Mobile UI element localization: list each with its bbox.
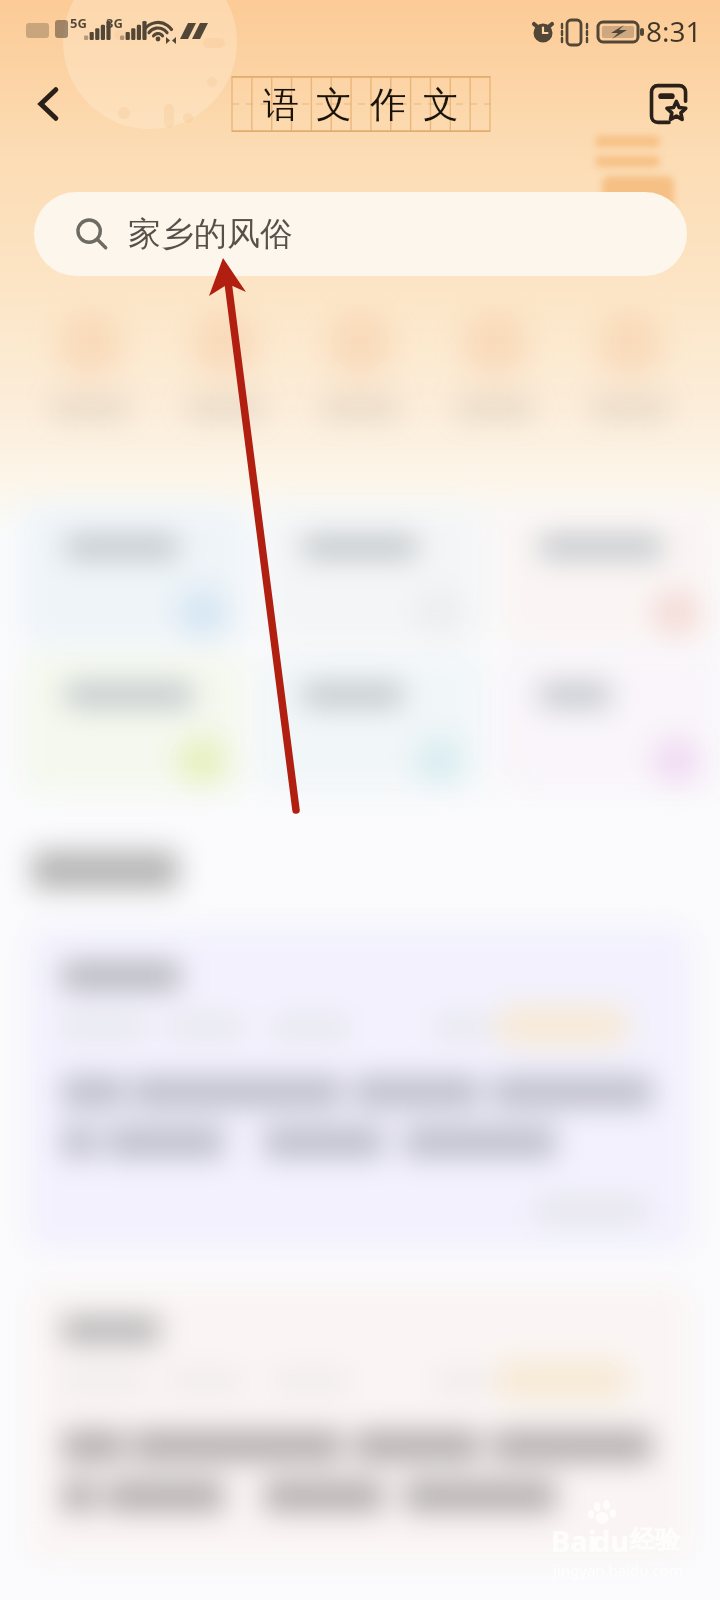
button[interactable]: Favorites — [638, 73, 700, 135]
button[interactable] — [259, 653, 485, 793]
staticText: 8:31 — [646, 12, 702, 50]
staticText: 文 — [316, 82, 352, 127]
staticText: 语 — [263, 82, 299, 127]
staticText: 家乡的风俗 — [128, 213, 293, 255]
button[interactable] — [22, 653, 248, 793]
staticText: du — [592, 1521, 630, 1560]
button[interactable]: 家乡的风俗 — [34, 192, 687, 276]
staticText: 文 — [423, 82, 459, 127]
button[interactable] — [496, 505, 720, 645]
button[interactable] — [28, 928, 692, 1250]
button[interactable]: Back — [18, 73, 80, 135]
button[interactable] — [496, 653, 720, 793]
staticText: 5G — [70, 14, 87, 32]
button[interactable] — [259, 505, 485, 645]
button[interactable] — [28, 1282, 692, 1562]
staticText: 经验 — [630, 1524, 680, 1555]
staticText: 3G — [106, 14, 123, 32]
staticText: 作 — [370, 82, 406, 127]
staticText: Bai — [551, 1521, 597, 1560]
button[interactable] — [22, 505, 248, 645]
